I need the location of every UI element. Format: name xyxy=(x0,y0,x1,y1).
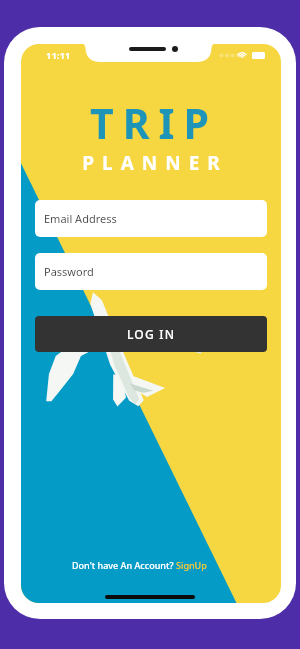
staticText: Email Address xyxy=(44,211,117,226)
staticText: LOG IN xyxy=(127,326,176,342)
staticText: Don't have An Account? xyxy=(72,559,176,571)
staticText: PLANNER xyxy=(25,150,281,176)
staticText: 11:11 xyxy=(46,49,71,62)
button[interactable]: LOG IN xyxy=(35,316,267,352)
button[interactable]: Don't have An Account? xyxy=(70,557,209,573)
staticText: Password xyxy=(44,264,94,279)
button[interactable]: Password xyxy=(35,253,267,290)
staticText: SignUp xyxy=(176,559,207,571)
staticText: TRIP xyxy=(24,95,281,151)
button[interactable]: Email Address xyxy=(35,200,267,237)
